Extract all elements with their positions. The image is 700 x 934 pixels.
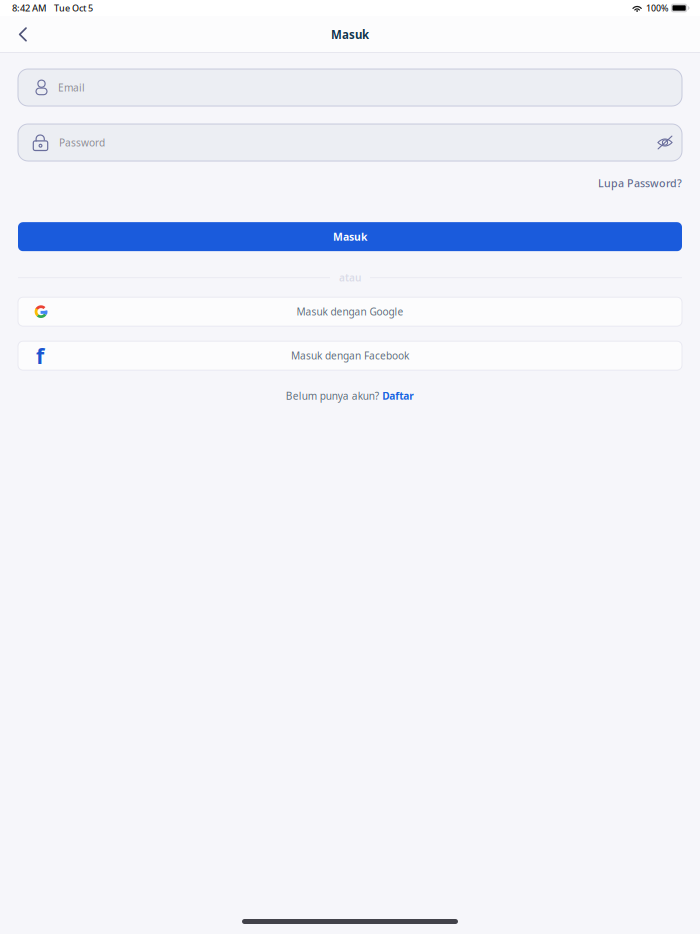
staticText: 100%: [646, 2, 668, 14]
button[interactable]: Show password: [653, 130, 677, 154]
staticText: Password: [59, 136, 105, 149]
button[interactable]: Masuk dengan Google: [18, 297, 682, 326]
staticText: Daftar: [382, 389, 414, 403]
button[interactable]: Masuk: [18, 222, 682, 251]
staticText: 8:42 AM: [12, 2, 47, 14]
staticText: Email: [58, 81, 85, 94]
staticText: Masuk dengan Google: [296, 305, 403, 318]
button[interactable]: f: [18, 341, 682, 370]
button[interactable]: Lupa Password?: [598, 174, 682, 192]
button[interactable]: Back: [6, 16, 40, 53]
staticText: atau: [339, 271, 361, 284]
staticText: Masuk dengan Facebook: [291, 349, 409, 362]
staticText: f: [36, 341, 44, 370]
staticText: Lupa Password?: [598, 176, 682, 190]
staticText: Tue Oct 5: [54, 2, 93, 14]
staticText: Masuk: [333, 230, 367, 244]
staticText: Belum punya akun?: [286, 389, 379, 403]
button[interactable]: Belum punya akun?: [286, 387, 414, 405]
staticText: Masuk: [331, 27, 369, 42]
